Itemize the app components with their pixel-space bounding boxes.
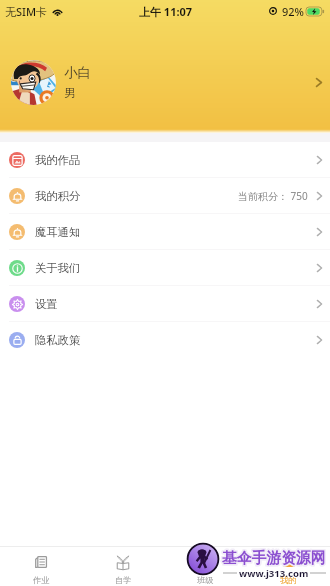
- button[interactable]: 作业: [0, 547, 82, 585]
- staticText: 自学: [115, 575, 132, 585]
- staticText: 我的作品: [35, 153, 81, 167]
- staticText: 基伞手游资源网: [222, 549, 326, 568]
- staticText: 我的积分: [35, 189, 81, 203]
- button[interactable]: 隐私政策: [0, 322, 330, 358]
- staticText: 我的: [280, 575, 297, 585]
- staticText: 隐私政策: [35, 333, 81, 347]
- staticText: 无SIM卡: [5, 4, 48, 19]
- button[interactable]: 班级: [164, 547, 247, 585]
- staticText: 设置: [35, 297, 58, 311]
- button[interactable]: 我的积分: [0, 178, 330, 214]
- staticText: 92%: [282, 4, 304, 19]
- staticText: 当前积分： 750: [238, 189, 308, 203]
- staticText: 上午 11:07: [139, 4, 193, 19]
- button[interactable]: 设置: [0, 286, 330, 322]
- staticText: 男: [64, 86, 76, 100]
- button[interactable]: 自学: [82, 547, 164, 585]
- staticText: 基伞手游资源网: [222, 549, 326, 568]
- staticText: 小白: [64, 64, 91, 81]
- staticText: 作业: [33, 575, 50, 585]
- staticText: 班级: [197, 575, 214, 585]
- staticText: www.j313.com: [239, 567, 309, 580]
- staticText: 魔耳通知: [35, 225, 81, 239]
- staticText: 关于我们: [35, 261, 81, 275]
- button[interactable]: 小白: [0, 54, 330, 110]
- button[interactable]: 关于我们: [0, 250, 330, 286]
- button[interactable]: 我的作品: [0, 142, 330, 178]
- button[interactable]: 我的: [247, 547, 330, 585]
- button[interactable]: 魔耳通知: [0, 214, 330, 250]
